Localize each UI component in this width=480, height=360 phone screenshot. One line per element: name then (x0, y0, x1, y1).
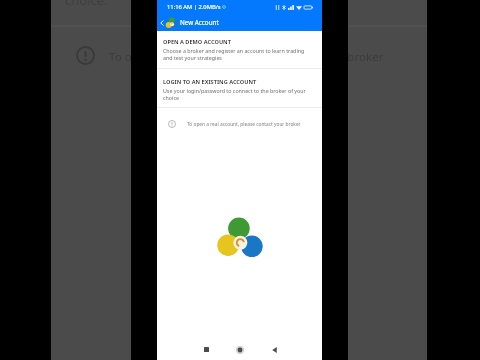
staticText: LOGIN TO AN EXISTING ACCOUNT (163, 78, 257, 86)
staticText: To open a real account, please contact y… (187, 121, 301, 128)
button[interactable]: Back (263, 339, 285, 360)
staticText: OPEN A DEMO ACCOUNT (163, 38, 231, 46)
staticText: To open a real account, please contact y… (109, 49, 384, 65)
staticText: New Account (180, 18, 219, 27)
button[interactable]: LOGIN TO AN EXISTING ACCOUNT (157, 76, 322, 105)
button[interactable]: Recent apps (195, 339, 217, 360)
staticText: choice. (65, 0, 108, 9)
staticText: Choose a broker and register an account … (163, 47, 313, 61)
staticText: Use your login/password to connect to th… (163, 87, 313, 101)
button[interactable]: Home (229, 339, 251, 360)
button[interactable]: OPEN A DEMO ACCOUNT (157, 36, 322, 65)
button[interactable]: Back (157, 18, 166, 27)
staticText: 11:16 AM | 2.0MB/s (167, 3, 221, 11)
button[interactable]: To open a real account, please contact y… (157, 114, 322, 134)
